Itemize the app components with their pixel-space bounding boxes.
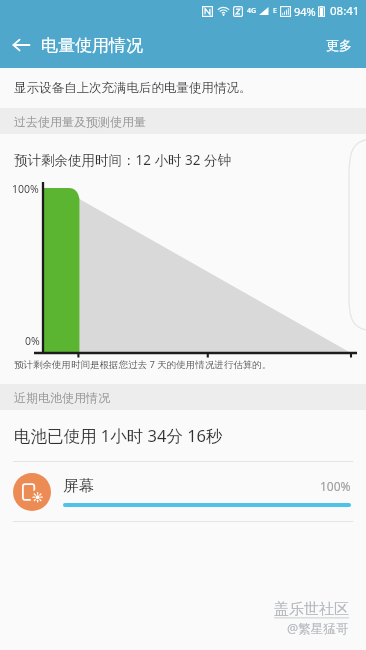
staticText: 100% bbox=[320, 478, 351, 494]
staticText: 100% bbox=[12, 182, 39, 196]
staticText: 电池已使用 1小时 34分 16秒 bbox=[14, 424, 223, 447]
staticText: 0% bbox=[25, 334, 40, 348]
staticText: 更多 bbox=[326, 37, 352, 53]
staticText: 显示设备自上次充满电后的电量使用情况。 bbox=[14, 80, 252, 96]
staticText: 预计剩余使用时间：12 小时 32 分钟 bbox=[14, 151, 231, 169]
staticText: 屏幕 bbox=[63, 476, 320, 496]
staticText: 94% bbox=[294, 4, 316, 19]
button[interactable]: 更多 bbox=[312, 24, 366, 66]
staticText: 08:41 bbox=[330, 3, 360, 19]
button[interactable]: 返回 bbox=[5, 29, 37, 61]
staticText: 近期电池使用情况 bbox=[14, 390, 110, 405]
staticText: 电量使用情况 bbox=[41, 35, 143, 56]
staticText: E bbox=[273, 6, 277, 16]
staticText: 预计剩余使用时间是根据您过去 7 天的使用情况进行估算的。 bbox=[14, 358, 272, 371]
staticText: @繁星猛哥 bbox=[287, 620, 349, 637]
staticText: 过去使用量及预测使用量 bbox=[14, 114, 146, 129]
button[interactable]: 屏幕 bbox=[0, 462, 366, 521]
staticText: 盖乐世社区 bbox=[274, 600, 349, 619]
staticText: 4G bbox=[247, 6, 257, 16]
